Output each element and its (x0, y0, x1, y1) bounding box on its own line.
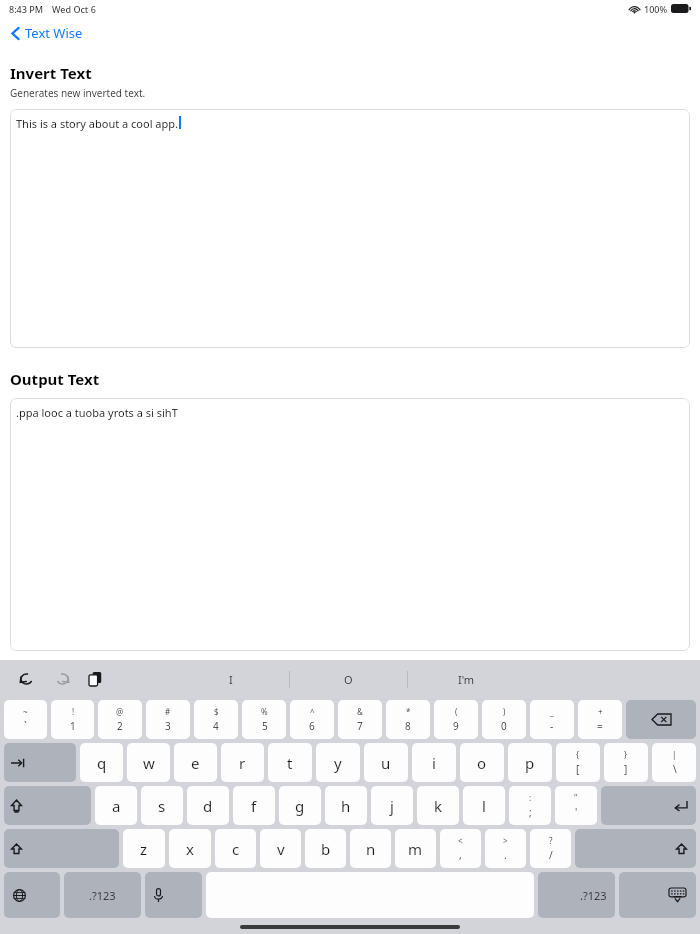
button[interactable]: Change keyboard (4, 872, 60, 918)
staticText: ? (549, 835, 553, 846)
staticText: 1 (70, 719, 76, 733)
button[interactable]: w (127, 743, 170, 782)
button[interactable]: a (95, 786, 137, 825)
button[interactable]: m (395, 829, 436, 868)
button[interactable]: Hide keyboard (619, 872, 696, 918)
button[interactable]: | (652, 743, 696, 782)
staticText: f (251, 796, 257, 816)
staticText: 6 (309, 719, 315, 733)
button[interactable]: $ (194, 700, 238, 739)
button[interactable]: Backspace (626, 700, 696, 739)
button[interactable]: < (440, 829, 481, 868)
staticText: Text Wise (25, 24, 83, 42)
staticText: ! (72, 706, 75, 717)
staticText: - (550, 719, 554, 733)
staticText: Wed Oct 6 (52, 3, 96, 15)
button[interactable]: _ (530, 700, 574, 739)
button[interactable]: Shift (4, 829, 119, 868)
button[interactable]: Shift (575, 829, 696, 868)
staticText: a (112, 796, 121, 816)
staticText: ~ (23, 706, 28, 717)
staticText: y (334, 753, 342, 773)
button[interactable]: Text Wise (11, 17, 700, 49)
button[interactable]: l (463, 786, 505, 825)
button[interactable]: & (338, 700, 382, 739)
staticText: i (432, 753, 436, 773)
staticText: n (366, 839, 376, 859)
button[interactable]: b (305, 829, 346, 868)
button[interactable]: " (555, 786, 597, 825)
button[interactable]: + (578, 700, 622, 739)
button[interactable]: e (174, 743, 217, 782)
button[interactable]: This is a story about a cool app. (10, 109, 690, 348)
button[interactable]: c (215, 829, 256, 868)
button[interactable]: * (386, 700, 430, 739)
button[interactable]: ) (482, 700, 526, 739)
staticText: .?123 (89, 888, 116, 903)
button[interactable]: Caps lock (4, 786, 91, 825)
staticText: I (229, 672, 233, 687)
button[interactable]: f (233, 786, 275, 825)
button[interactable]: g (279, 786, 321, 825)
button[interactable]: .ppa looc a tuoba yrots a si sihT (10, 398, 690, 651)
staticText: ^ (310, 706, 315, 717)
button[interactable]: > (485, 829, 526, 868)
button[interactable]: r (221, 743, 264, 782)
button[interactable]: O (290, 660, 407, 698)
staticText: " (574, 792, 578, 803)
staticText: $ (214, 706, 219, 717)
staticText: ) (503, 706, 506, 717)
button[interactable]: ^ (290, 700, 334, 739)
button[interactable]: I'm (408, 660, 525, 698)
button[interactable]: x (169, 829, 211, 868)
button[interactable]: z (123, 829, 165, 868)
button[interactable]: u (364, 743, 408, 782)
button[interactable]: Return (601, 786, 696, 825)
button[interactable]: ( (434, 700, 478, 739)
button[interactable]: ? (530, 829, 571, 868)
staticText: * (406, 706, 411, 717)
staticText: 8:43 PM (9, 3, 43, 15)
button[interactable]: y (316, 743, 360, 782)
staticText: Invert Text (10, 63, 92, 83)
button[interactable]: d (187, 786, 229, 825)
staticText: k (434, 796, 443, 816)
staticText: m (408, 839, 423, 859)
button[interactable]: v (260, 829, 301, 868)
button[interactable]: o (460, 743, 504, 782)
button[interactable]: } (604, 743, 648, 782)
button[interactable]: Redo (48, 666, 74, 692)
button[interactable]: @ (98, 700, 142, 739)
staticText: & (357, 706, 363, 717)
button[interactable]: Undo (14, 666, 40, 692)
button[interactable]: p (508, 743, 552, 782)
button[interactable]: .?123 (538, 872, 615, 918)
button[interactable]: % (242, 700, 286, 739)
button[interactable]: j (371, 786, 413, 825)
button[interactable]: i (412, 743, 456, 782)
button[interactable]: Dictate (145, 872, 202, 918)
staticText: _ (550, 706, 554, 717)
staticText: + (598, 706, 603, 717)
button[interactable]: ! (51, 700, 94, 739)
button[interactable]: ~ (4, 700, 47, 739)
staticText: h (341, 796, 351, 816)
staticText: w (143, 753, 155, 773)
button[interactable]: .?123 (64, 872, 141, 918)
button[interactable]: s (141, 786, 183, 825)
button[interactable]: Paste (82, 666, 108, 692)
staticText: [ (576, 762, 580, 776)
staticText: b (321, 839, 331, 859)
button[interactable]: { (556, 743, 600, 782)
button[interactable]: : (509, 786, 551, 825)
button[interactable]: h (325, 786, 367, 825)
button[interactable]: # (146, 700, 190, 739)
button[interactable]: I (172, 660, 289, 698)
button[interactable]: t (268, 743, 312, 782)
staticText: ; (529, 805, 532, 819)
button[interactable]: n (350, 829, 391, 868)
button[interactable]: q (80, 743, 123, 782)
button[interactable]: k (417, 786, 459, 825)
button[interactable]: Tab (4, 743, 76, 782)
